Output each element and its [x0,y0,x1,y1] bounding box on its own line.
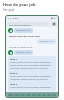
staticText: Today at 10:15 [16,29,31,32]
staticText: For you! [3,8,15,12]
staticText: Hello! How can I help you? [9,34,41,37]
staticText: How do your job [3,2,36,7]
button[interactable]: Today at 10:17 [39,40,54,43]
staticText: Lorem ipsum dolor sit amet consectetur a… [10,75,54,78]
button[interactable]: Recommendations [8,20,56,27]
button[interactable]: Message input [8,92,56,97]
button[interactable]: Assistant avatar [8,28,13,33]
staticText: Step 2 [10,71,18,74]
staticText: ▮▮ ▰ [51,17,56,20]
button[interactable]: Step 1 [10,57,54,90]
button[interactable]: Today at 10:19 [16,51,31,54]
staticText: 9:41 ▪ ▪ ▪ [8,17,19,20]
staticText: Step 3 [10,82,18,85]
button[interactable]: Today at 10:15 [16,29,31,32]
button[interactable]: Assistant avatar [8,50,13,55]
staticText: Recommendations [9,23,32,26]
staticText: Today at 10:19 [16,51,31,54]
button[interactable]: Settings [51,21,56,26]
staticText: continue reading here for all the rest [10,78,48,81]
staticText: Lorem ipsum dolor sit amet consectetur a… [10,61,54,64]
staticText: Step 1 [10,57,18,60]
staticText: Lorem ipsum dolor sit amet consectetur a… [10,64,54,67]
staticText: Today at 10:17 [39,40,54,43]
staticText: continue reading here for all the rest [10,67,48,70]
staticText: Lorem ipsum dolor sit amet consectetur a… [10,86,54,89]
staticText: I'd like to know more [9,45,33,48]
